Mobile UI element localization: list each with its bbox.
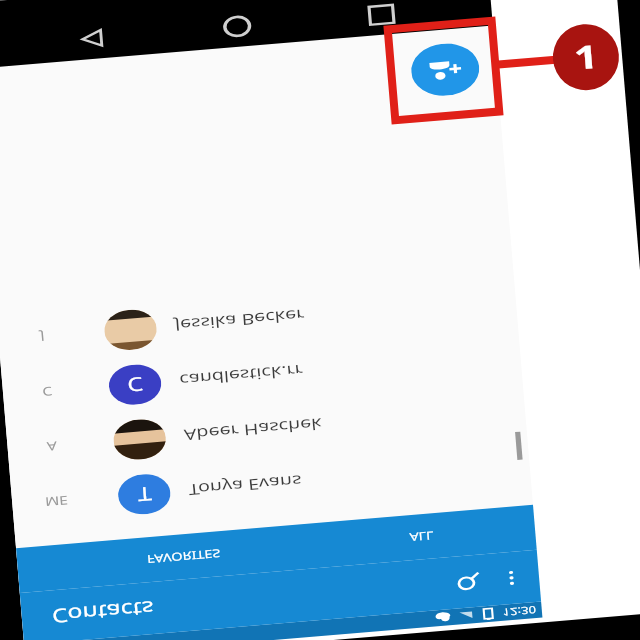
- button[interactable]: C: [1, 325, 522, 424]
- staticText: J: [40, 329, 46, 345]
- staticText: 12:30: [502, 603, 537, 620]
- button[interactable]: ME: [10, 435, 532, 533]
- staticText: ME: [44, 493, 69, 511]
- button[interactable]: Search: [443, 562, 493, 601]
- button[interactable]: FAVORITES: [71, 525, 298, 588]
- staticText: A: [46, 438, 58, 455]
- button[interactable]: Back: [64, 17, 119, 61]
- button[interactable]: A: [6, 380, 527, 478]
- staticText: candlestick.rr: [179, 361, 304, 391]
- staticText: C: [126, 371, 145, 398]
- button[interactable]: ALL: [308, 505, 535, 568]
- button[interactable]: Recents: [354, 0, 409, 37]
- staticText: T: [137, 481, 153, 508]
- staticText: 1: [572, 34, 601, 80]
- button[interactable]: More options: [491, 561, 532, 594]
- staticText: C: [42, 384, 54, 400]
- button[interactable]: J: [0, 271, 518, 369]
- button[interactable]: Add contact: [409, 41, 481, 98]
- staticText: FAVORITES: [146, 546, 222, 567]
- staticText: ALL: [409, 528, 435, 545]
- staticText: Jessika Becker: [174, 305, 306, 336]
- staticText: Abeer Haschek: [183, 414, 323, 446]
- staticText: Tonya Evans: [188, 471, 303, 500]
- staticText: Contacts: [51, 595, 155, 629]
- button[interactable]: Home: [209, 5, 264, 49]
